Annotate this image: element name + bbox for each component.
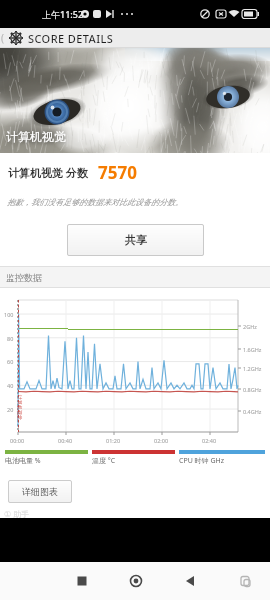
button[interactable] xyxy=(70,569,94,593)
staticText: ① 助手 xyxy=(4,508,30,519)
staticText: 计算机视觉 xyxy=(6,129,66,144)
button[interactable]: 详细图表 xyxy=(8,480,72,503)
staticText: 0.4GHz xyxy=(243,408,262,415)
staticText: 共享 xyxy=(125,233,147,247)
staticText: 02:40 xyxy=(202,437,217,444)
staticText: 计算机视觉 xyxy=(17,395,23,420)
staticText: 7570 xyxy=(98,161,137,184)
staticText: 抱歉，我们没有足够的数据来对比此设备的分数。 xyxy=(7,197,183,207)
staticText: 上午11:52 xyxy=(42,8,84,20)
button[interactable] xyxy=(233,569,257,593)
staticText: 60 xyxy=(7,358,14,365)
button[interactable] xyxy=(178,569,202,593)
button[interactable]: ( xyxy=(1,31,4,45)
button[interactable] xyxy=(124,569,148,593)
staticText: 20 xyxy=(7,406,14,413)
staticText: 1.2GHz xyxy=(243,365,262,372)
staticText: 00:00 xyxy=(10,437,25,444)
staticText: 02:00 xyxy=(154,437,169,444)
staticText: 温度 °C xyxy=(92,456,116,466)
button[interactable]: 共享 xyxy=(67,224,204,256)
staticText: 00:40 xyxy=(58,437,73,444)
staticText: 1.6GHz xyxy=(243,346,262,353)
staticText: 01:20 xyxy=(106,437,121,444)
staticText: SCORE DETAILS xyxy=(28,31,114,46)
staticText: 0.8GHz xyxy=(243,386,262,393)
staticText: 监控数据 xyxy=(6,272,42,283)
staticText: 电池电量 % xyxy=(5,456,41,466)
staticText: 2GHz xyxy=(243,323,257,330)
staticText: 100 xyxy=(4,311,14,318)
staticText: 80 xyxy=(7,335,14,342)
staticText: CPU 时钟 GHz xyxy=(179,456,224,466)
staticText: 计算机视觉 分数 xyxy=(8,165,88,180)
staticText: 40 xyxy=(7,382,14,389)
staticText: 详细图表 xyxy=(22,486,58,497)
